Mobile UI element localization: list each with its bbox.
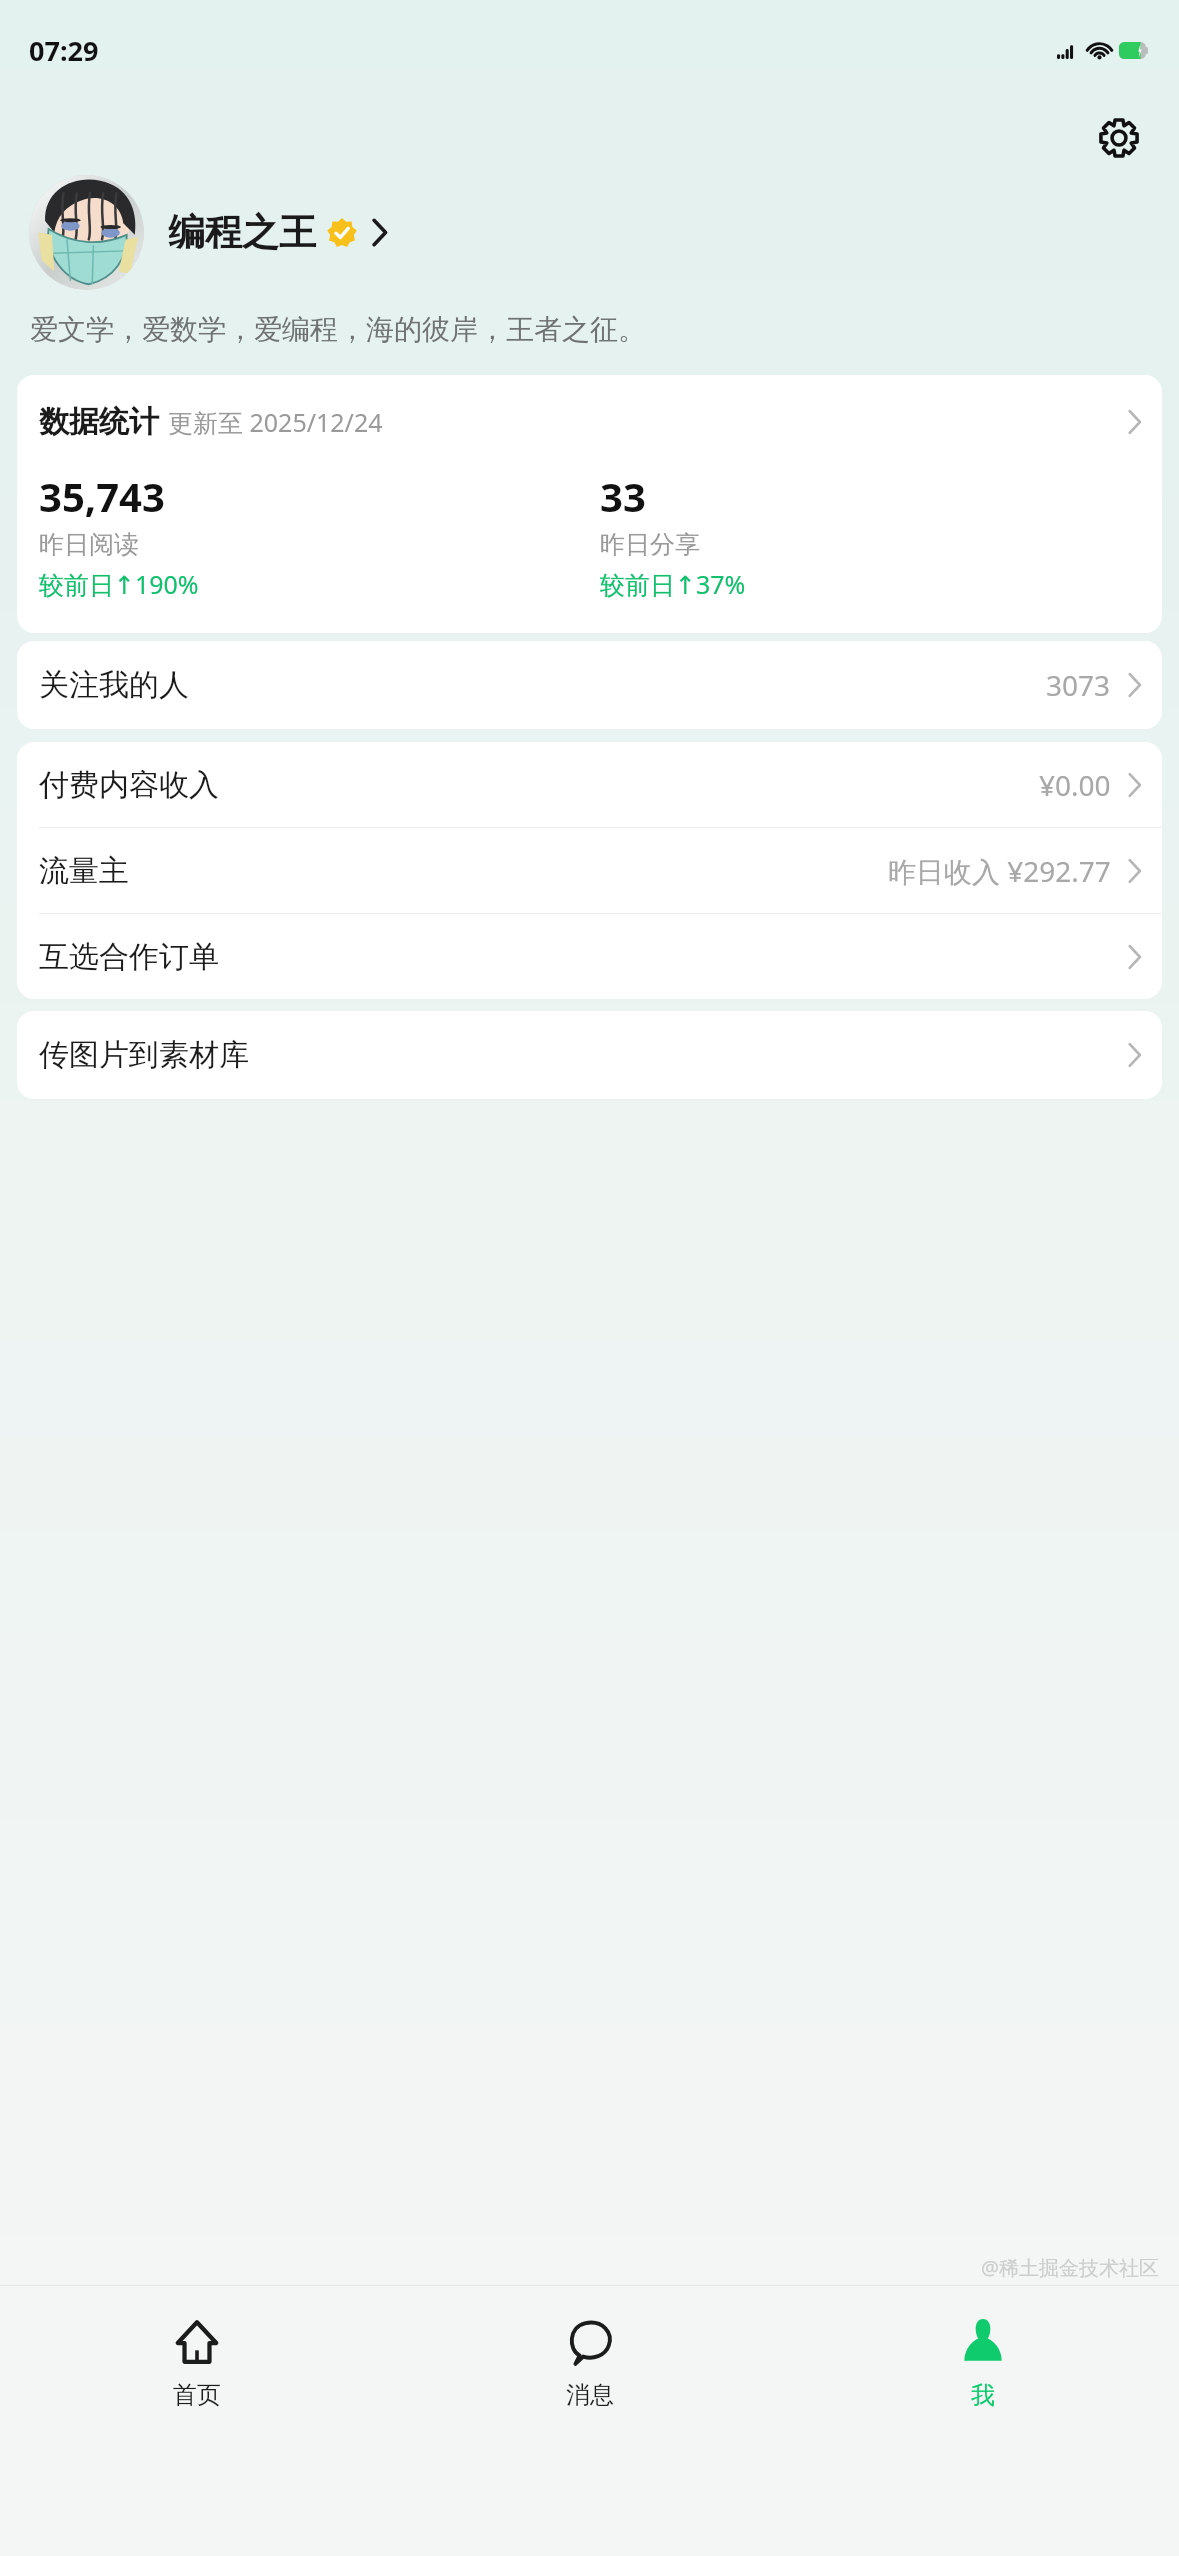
staticText: 昨日收入 ¥292.77 xyxy=(888,852,1111,890)
button[interactable]: 我 xyxy=(786,2286,1179,2556)
button[interactable]: 关注我的人 xyxy=(17,641,1162,729)
staticText: 3073 xyxy=(1046,666,1111,704)
staticText: 33 xyxy=(600,469,646,523)
staticText: 我 xyxy=(971,2380,995,2410)
button[interactable]: Settings xyxy=(1090,109,1148,167)
button[interactable]: 数据统计 xyxy=(17,375,1162,445)
staticText: 互选合作订单 xyxy=(39,938,219,976)
staticText: 流量主 xyxy=(39,852,129,890)
staticText: ¥0.00 xyxy=(1039,766,1111,804)
staticText: 关注我的人 xyxy=(39,666,189,704)
button[interactable]: 消息 xyxy=(393,2286,786,2556)
button[interactable]: 流量主 xyxy=(17,828,1162,913)
button[interactable]: 编程之王 xyxy=(29,175,1150,290)
staticText: 传图片到素材库 xyxy=(39,1036,249,1074)
staticText: 付费内容收入 xyxy=(39,766,219,804)
staticText: @稀土掘金技术社区 xyxy=(981,2254,1159,2281)
button[interactable]: 付费内容收入 xyxy=(17,742,1162,827)
staticText: 编程之王 xyxy=(168,209,316,256)
staticText: 更新至 2025/12/24 xyxy=(168,405,383,439)
button[interactable]: 首页 xyxy=(0,2286,393,2556)
staticText: 07:29 xyxy=(29,32,99,69)
staticText: 爱文学，爱数学，爱编程，海的彼岸，王者之征。 xyxy=(30,312,646,347)
staticText: 昨日分享 xyxy=(600,529,700,560)
button[interactable]: 传图片到素材库 xyxy=(17,1011,1162,1099)
button[interactable]: 互选合作订单 xyxy=(17,914,1162,999)
staticText: 昨日阅读 xyxy=(39,529,139,560)
staticText: 首页 xyxy=(173,2380,221,2410)
staticText: 消息 xyxy=(566,2380,614,2410)
staticText: 35,743 xyxy=(39,469,165,523)
staticText: 较前日↑37% xyxy=(600,567,746,601)
staticText: 较前日↑190% xyxy=(39,567,199,601)
staticText: 数据统计 xyxy=(39,403,159,441)
